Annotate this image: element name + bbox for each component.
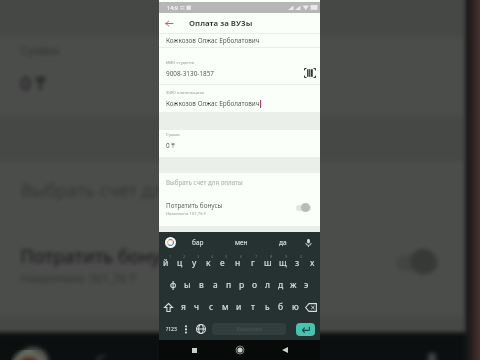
button[interactable]: Voice input [303, 237, 314, 248]
button[interactable]: Voice input [416, 347, 448, 360]
staticText: мен [235, 238, 248, 247]
button[interactable]: Home [230, 340, 250, 360]
staticText: к [206, 257, 211, 269]
staticText: е [220, 257, 225, 269]
staticText: Казахский [237, 326, 262, 333]
button[interactable]: ж [287, 274, 300, 296]
button[interactable]: х [305, 252, 320, 274]
staticText: а [213, 279, 218, 291]
button[interactable]: Back [159, 14, 178, 33]
button[interactable]: о [248, 274, 261, 296]
staticText: з [295, 257, 300, 269]
staticText: ф [170, 279, 177, 291]
staticText: с [209, 301, 214, 313]
staticText: х [310, 257, 315, 269]
staticText: ь [265, 301, 270, 313]
button[interactable]: д [274, 274, 287, 296]
button[interactable]: ы [180, 274, 194, 296]
button[interactable]: Потратить бонусы [0, 231, 465, 295]
staticText: у [192, 257, 197, 269]
staticText: 2 [183, 254, 186, 259]
staticText: 14:9 [167, 4, 178, 11]
button[interactable]: Кожкозов Олжас Ерболатович [159, 34, 320, 47]
staticText: й [163, 257, 169, 269]
button[interactable]: Emoji [178, 318, 193, 340]
button[interactable]: Change language [193, 318, 209, 340]
staticText: я [181, 301, 186, 313]
button[interactable]: Enter [296, 323, 315, 336]
staticText: г [251, 257, 255, 269]
button[interactable]: л [261, 274, 274, 296]
button[interactable]: щ [275, 252, 290, 274]
button[interactable]: б [274, 296, 288, 318]
button[interactable]: е [215, 252, 230, 274]
button[interactable]: Выбрать счет для оплаты [0, 162, 465, 211]
button[interactable]: э [300, 274, 313, 296]
staticText: о [252, 279, 258, 291]
staticText: Выбрать счет для оплаты [166, 178, 243, 186]
button[interactable]: и [232, 296, 246, 318]
staticText: ч [194, 301, 200, 313]
button[interactable]: м [218, 296, 232, 318]
staticText: 9 [285, 254, 288, 259]
staticText: Потратить бонусы [166, 201, 223, 210]
staticText: 0 ₸ [166, 141, 175, 150]
button[interactable]: н [230, 252, 245, 274]
staticText: 3 [197, 254, 200, 259]
button[interactable]: у [187, 252, 201, 274]
button[interactable]: Recent apps [184, 340, 204, 360]
staticText: ФИО плательщика [166, 90, 204, 96]
button[interactable]: Back [275, 340, 295, 360]
staticText: ?123 [166, 326, 177, 333]
button[interactable]: р [235, 274, 248, 296]
staticText: бар [95, 350, 130, 360]
button[interactable]: ь [260, 296, 274, 318]
staticText: 0 [300, 254, 303, 259]
button[interactable]: Выбрать счет для оплаты [159, 173, 320, 190]
staticText: ж [290, 279, 297, 291]
staticText: 7 [255, 254, 258, 259]
staticText: Потратить бонусы [20, 243, 185, 269]
button[interactable]: п [222, 274, 235, 296]
button[interactable]: ф [166, 274, 180, 296]
button[interactable]: ч [190, 296, 204, 318]
staticText: д [278, 279, 284, 291]
staticText: и [236, 301, 242, 313]
button[interactable]: Backspace [302, 296, 320, 318]
staticText: 9008-3130-1857 [166, 69, 214, 78]
button[interactable]: с [204, 296, 218, 318]
button[interactable]: з [290, 252, 305, 274]
button[interactable]: в [194, 274, 208, 296]
button[interactable]: т [246, 296, 260, 318]
staticText: ц [177, 257, 183, 269]
staticText: бар [192, 238, 204, 247]
staticText: ИИН студента [166, 60, 195, 66]
button[interactable]: к [201, 252, 215, 274]
staticText: н [235, 257, 241, 269]
button[interactable]: г [245, 252, 260, 274]
staticText: Выбрать счет для оплаты [20, 176, 243, 199]
button[interactable]: ю [288, 296, 302, 318]
staticText: Сумма [20, 43, 61, 61]
button[interactable]: й [159, 252, 173, 274]
staticText: ю [292, 301, 299, 313]
button[interactable]: ?123 [164, 318, 178, 340]
button[interactable]: Shift [159, 296, 177, 318]
staticText: в [199, 279, 204, 291]
button[interactable]: а [208, 274, 222, 296]
staticText: п [226, 279, 232, 291]
staticText: т [251, 301, 255, 313]
staticText: э [304, 279, 309, 291]
button[interactable]: Потратить бонусы [159, 197, 320, 219]
staticText: Сумма [166, 132, 180, 138]
staticText: Накоплено 161,76 ₸ [166, 211, 206, 217]
button[interactable]: ш [260, 252, 275, 274]
staticText: Кожкозов Олжас Ерболатович [166, 99, 260, 108]
button[interactable]: Scan card [303, 66, 317, 80]
staticText: 1 [169, 254, 172, 259]
button[interactable]: ц [173, 252, 187, 274]
button[interactable]: я [177, 296, 190, 318]
